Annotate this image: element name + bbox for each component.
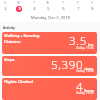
staticText: Today 19:46 (76, 91, 94, 95)
button[interactable]: T (55, 1, 70, 12)
staticText: Walking + Running Distance (4, 33, 40, 44)
staticText: Steps (4, 57, 15, 62)
staticText: 8 (91, 6, 94, 12)
staticText: 3 (18, 6, 21, 12)
button[interactable]: W (40, 1, 55, 12)
button[interactable]: F (70, 1, 85, 12)
staticText: T (62, 1, 64, 5)
staticText: M (17, 1, 20, 5)
staticText: 5 (47, 6, 50, 12)
staticText: steps (84, 66, 94, 71)
staticText: Activity (3, 26, 15, 30)
staticText: F (77, 1, 79, 5)
staticText: 3.5 (69, 33, 88, 49)
button[interactable]: Steps (2, 56, 97, 76)
staticText: 6 (62, 6, 65, 12)
staticText: T (33, 1, 35, 5)
staticText: 5,390 (51, 57, 84, 73)
staticText: Monday, Dec 3, 2018 (31, 15, 70, 20)
staticText: floors (84, 88, 94, 93)
staticText: Today 19:46 (76, 69, 94, 73)
button[interactable]: T (26, 1, 41, 12)
button[interactable]: S (84, 1, 99, 12)
staticText: 4 (33, 6, 36, 12)
staticText: 2 (4, 6, 7, 12)
staticText: S (4, 1, 6, 5)
staticText: 7 (77, 6, 80, 12)
button[interactable]: M (11, 1, 26, 12)
staticText: km (88, 42, 94, 47)
button[interactable]: S (0, 1, 12, 12)
button[interactable]: Walking + Running Distance (2, 32, 97, 54)
button[interactable]: Flights Climbed (2, 78, 97, 100)
staticText: W (46, 1, 49, 5)
staticText: S (91, 1, 93, 5)
staticText: 4 (76, 79, 84, 95)
staticText: Today 19:46 (76, 46, 94, 50)
staticText: Flights Climbed (4, 79, 34, 84)
